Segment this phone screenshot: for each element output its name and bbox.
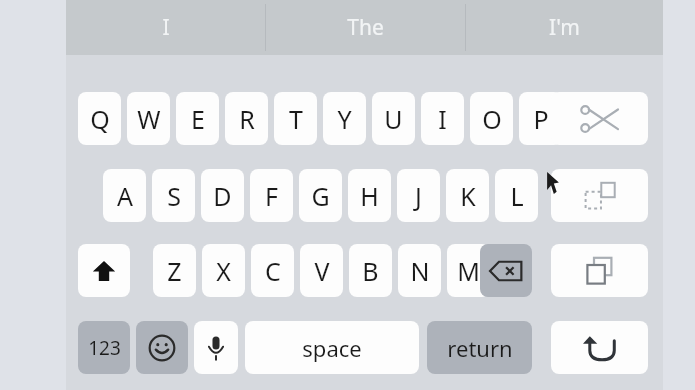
staticText: return [447,333,513,363]
button[interactable]: N [398,244,441,297]
staticText: G [311,179,330,213]
button[interactable]: S [152,169,195,222]
button[interactable]: K [446,169,489,222]
staticText: D [213,179,232,213]
button[interactable]: O [470,92,513,145]
button[interactable]: Y [323,92,366,145]
staticText: 123 [88,335,121,361]
staticText: H [360,179,379,213]
staticText: T [289,102,303,136]
staticText: O [482,102,502,136]
button[interactable]: Copy [551,169,648,222]
button[interactable]: Z [153,244,196,297]
button[interactable]: Backspace [480,244,532,297]
staticText: I [438,102,447,136]
button[interactable]: Emoji [136,321,188,374]
staticText: W [137,102,161,136]
staticText: R [239,102,255,136]
button[interactable]: W [127,92,170,145]
button[interactable]: H [348,169,391,222]
button[interactable]: U [372,92,415,145]
button[interactable]: I'm [466,0,663,55]
staticText: P [533,102,549,136]
button[interactable]: L [495,169,538,222]
button[interactable]: Undo [551,321,648,374]
staticText: Z [167,254,182,288]
button[interactable]: V [300,244,343,297]
staticText: K [460,179,476,213]
button[interactable]: P [519,92,562,145]
button[interactable]: G [299,169,342,222]
staticText: L [510,179,524,213]
staticText: Y [337,102,352,136]
button[interactable]: R [225,92,268,145]
button[interactable]: Q [78,92,121,145]
button[interactable]: Paste [551,244,648,297]
staticText: The [347,13,384,42]
staticText: I'm [549,13,580,42]
button[interactable]: Shift [78,244,130,297]
button[interactable]: E [176,92,219,145]
staticText: X [216,254,231,288]
button[interactable]: A [103,169,146,222]
button[interactable]: Cut [551,92,648,145]
staticText: F [265,179,278,213]
button[interactable]: B [349,244,392,297]
staticText: S [167,179,181,213]
staticText: N [410,254,430,288]
staticText: space [302,333,362,363]
staticText: J [415,179,422,213]
button[interactable]: I [421,92,464,145]
staticText: C [265,254,281,288]
staticText: A [117,179,133,213]
button[interactable]: D [201,169,244,222]
button[interactable]: C [251,244,294,297]
staticText: M [457,254,480,288]
staticText: B [362,254,379,288]
staticText: I [162,13,170,42]
button[interactable]: return [427,321,532,374]
button[interactable]: X [202,244,245,297]
button[interactable]: The [266,0,465,55]
button[interactable]: Dictate [194,321,238,374]
staticText: Q [90,102,110,136]
button[interactable]: M [447,244,490,297]
staticText: E [191,102,205,136]
button[interactable]: J [397,169,440,222]
button[interactable]: space [245,321,419,374]
button[interactable]: 123 [78,321,130,374]
staticText: V [314,254,330,288]
button[interactable]: T [274,92,317,145]
staticText: U [384,102,403,136]
button[interactable]: F [250,169,293,222]
